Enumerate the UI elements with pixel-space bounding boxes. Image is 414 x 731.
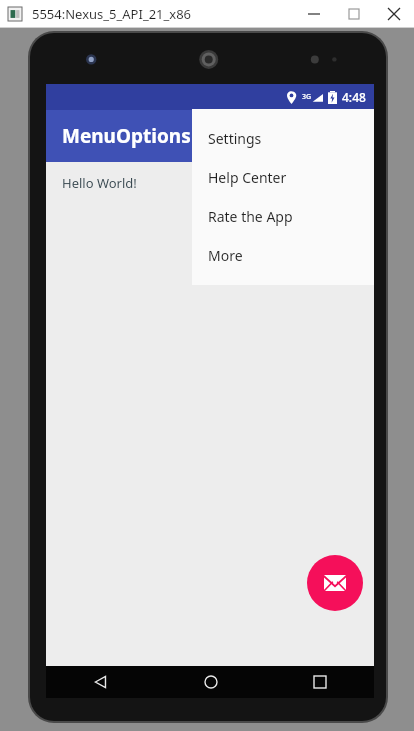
button[interactable]: Home	[156, 666, 265, 698]
staticText: 3G	[302, 92, 312, 102]
staticText: More	[208, 246, 243, 265]
staticText: MenuOptionsDemo	[62, 123, 247, 149]
staticText: Hello World!	[62, 174, 137, 192]
staticText: Settings	[208, 129, 262, 148]
staticText: Help Center	[208, 168, 287, 187]
button[interactable]: Maximise	[334, 0, 374, 27]
button[interactable]: Help Center	[192, 158, 374, 197]
button[interactable]: Back	[46, 666, 156, 698]
button[interactable]: Settings	[192, 119, 374, 158]
staticText: 4:48	[342, 89, 366, 105]
button[interactable]: More	[192, 236, 374, 275]
button[interactable]: Rate the App	[192, 197, 374, 236]
button[interactable]: Minimise	[294, 0, 334, 27]
staticText: Rate the App	[208, 207, 293, 226]
button[interactable]: Recent apps	[265, 666, 374, 698]
button[interactable]: Compose email	[307, 555, 363, 611]
button[interactable]: Close	[374, 0, 414, 27]
staticText: 5554:Nexus_5_API_21_x86	[32, 5, 192, 23]
